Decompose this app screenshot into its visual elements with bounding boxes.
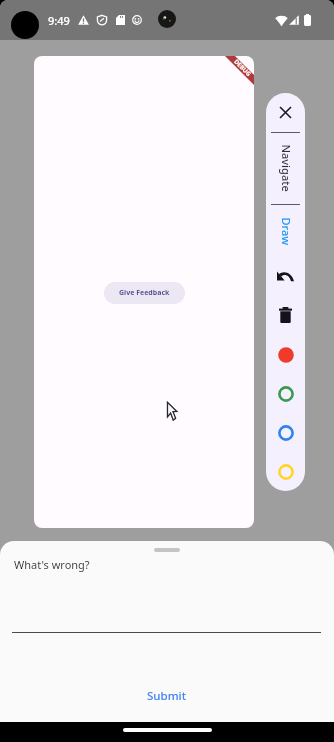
button[interactable]: Navigate bbox=[266, 133, 305, 204]
staticText: What's wrong? bbox=[14, 557, 90, 572]
staticText: Submit bbox=[147, 688, 187, 704]
staticText: 9:49 bbox=[48, 13, 70, 28]
button[interactable]: Undo bbox=[266, 257, 305, 293]
button[interactable]: Yellow pen bbox=[266, 453, 305, 491]
button[interactable]: Delete bbox=[266, 297, 305, 333]
button[interactable]: Red pen bbox=[266, 336, 305, 374]
staticText: DEBUG bbox=[232, 58, 253, 78]
button[interactable]: Green pen bbox=[266, 375, 305, 413]
staticText: Draw bbox=[278, 217, 293, 245]
button[interactable]: Blue pen bbox=[266, 414, 305, 452]
staticText: Navigate bbox=[278, 144, 293, 192]
button[interactable]: Give Feedback bbox=[104, 282, 185, 304]
button[interactable]: Close bbox=[266, 94, 305, 130]
button[interactable]: Submit bbox=[125, 683, 209, 709]
button[interactable]: Draw bbox=[266, 205, 305, 257]
staticText: Give Feedback bbox=[119, 288, 170, 298]
